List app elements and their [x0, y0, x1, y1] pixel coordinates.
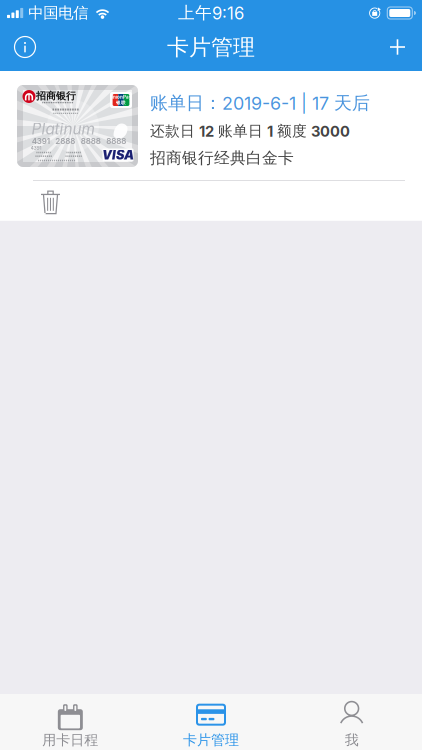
staticText: 账单日：2019-6-1 | 17 天后	[150, 92, 370, 114]
button[interactable]: 我	[281, 694, 422, 750]
staticText: 中国电信	[28, 3, 88, 23]
staticText: 2888	[55, 136, 75, 146]
button[interactable]: Delete card	[0, 181, 74, 221]
staticText: 4391	[30, 145, 41, 151]
staticText: 还款日 12 账单日 1 额度 3000	[150, 122, 350, 140]
button[interactable]: 卡片管理	[141, 694, 281, 750]
button[interactable]: 用卡日程	[0, 694, 141, 750]
staticText: 8888	[81, 136, 101, 146]
staticText: 招商银行	[36, 90, 76, 102]
staticText: 上午9:16	[178, 2, 244, 23]
button[interactable]: Add card	[378, 26, 422, 71]
staticText: VISA	[102, 147, 134, 163]
staticText: 8888	[106, 136, 126, 146]
staticText: Platinum	[31, 120, 94, 138]
staticText: 用卡日程	[42, 731, 98, 749]
staticText: 卡片管理	[183, 731, 239, 749]
staticText: 我	[345, 731, 359, 749]
staticText: 4391	[32, 136, 50, 146]
staticText: UnionPay	[110, 94, 132, 100]
staticText: 招商银行经典白金卡	[150, 148, 294, 168]
button[interactable]: Info	[0, 26, 48, 71]
staticText: 银联	[116, 100, 126, 106]
staticText: 卡片管理	[167, 34, 255, 61]
